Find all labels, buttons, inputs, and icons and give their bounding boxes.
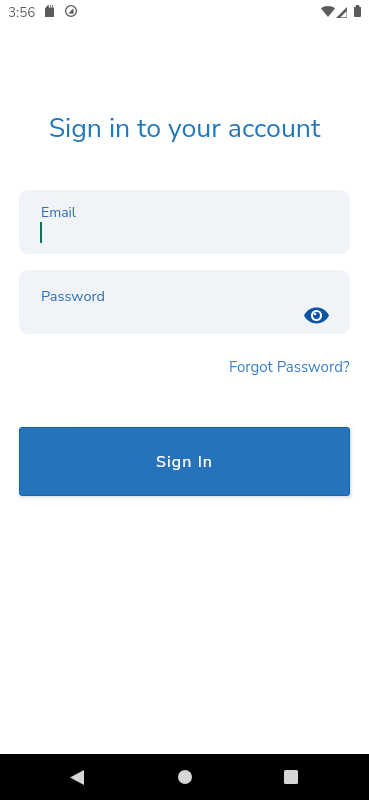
staticText: Sign in to your account xyxy=(0,110,369,146)
button[interactable]: Show password xyxy=(294,298,338,332)
button[interactable]: Password xyxy=(19,270,350,334)
staticText: Password xyxy=(41,286,106,306)
button[interactable]: Email xyxy=(19,190,350,254)
button[interactable]: Home xyxy=(165,757,205,797)
button[interactable]: Back xyxy=(57,757,97,797)
staticText: Email xyxy=(41,203,76,222)
button[interactable]: Sign In xyxy=(19,427,350,496)
staticText: 3:56 xyxy=(8,3,36,21)
button[interactable]: Recent apps xyxy=(271,757,311,797)
staticText: Sign In xyxy=(156,451,214,473)
button[interactable]: Forgot Password? xyxy=(229,357,350,377)
